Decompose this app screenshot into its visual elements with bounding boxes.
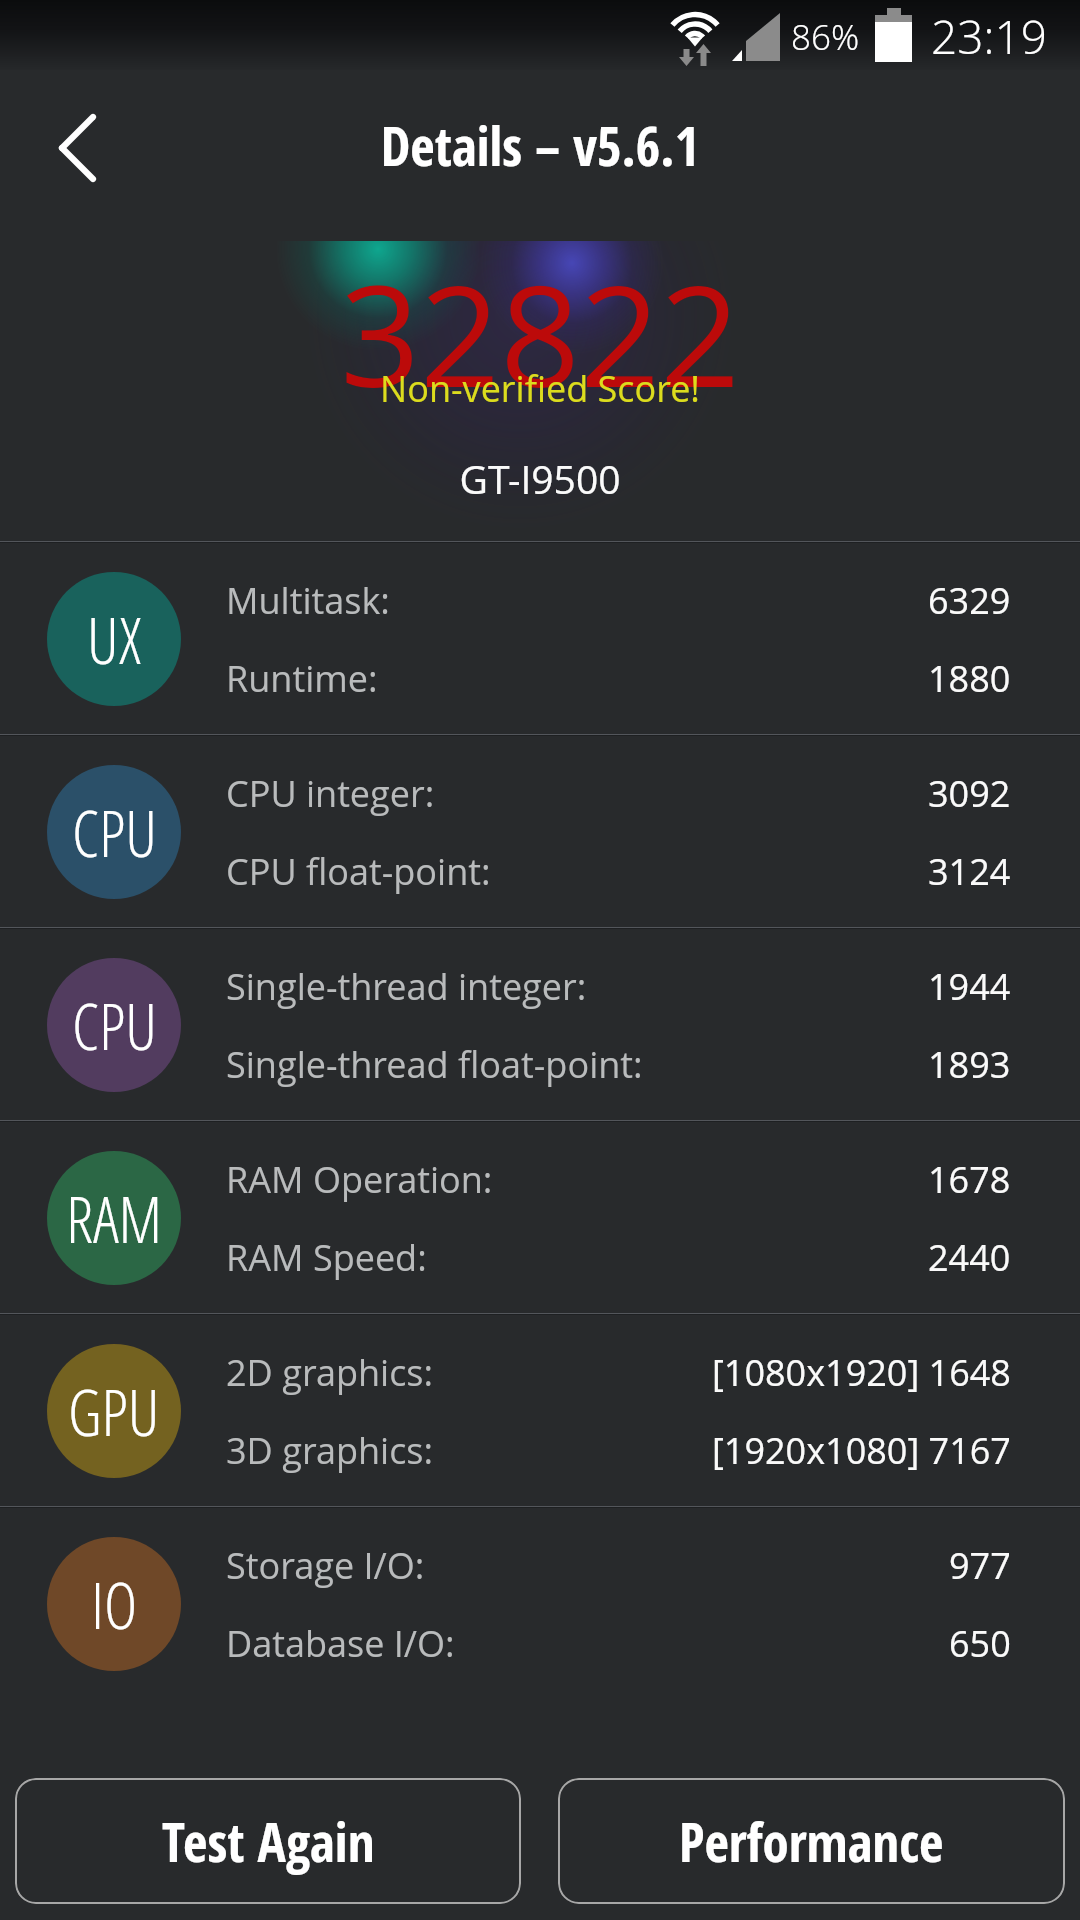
staticText: UX <box>87 596 141 683</box>
staticText: 1944 <box>928 962 1011 1011</box>
button[interactable]: CPU <box>0 736 1080 927</box>
staticText: RAM <box>66 1175 163 1262</box>
staticText: RAM Speed: <box>226 1233 427 1282</box>
staticText: Details – v5.6.1 <box>0 109 1080 181</box>
staticText: GPU <box>68 1368 160 1455</box>
staticText: GT-I9500 <box>0 452 1080 505</box>
staticText: IO <box>91 1561 138 1648</box>
staticText: CPU float-point: <box>226 847 491 896</box>
staticText: CPU <box>72 789 157 876</box>
staticText: Performance <box>679 1805 944 1877</box>
staticText: 86% <box>791 13 860 61</box>
staticText: 1678 <box>928 1155 1011 1204</box>
button[interactable]: IO <box>0 1508 1080 1699</box>
staticText: 1893 <box>928 1040 1011 1089</box>
button[interactable]: Performance <box>558 1778 1065 1904</box>
staticText: 3092 <box>928 769 1011 818</box>
staticText: Storage I/O: <box>226 1541 425 1590</box>
staticText: Single-thread float-point: <box>226 1040 643 1089</box>
staticText: Single-thread integer: <box>226 962 587 1011</box>
staticText: 3124 <box>928 847 1011 896</box>
staticText: 3D graphics: <box>226 1426 434 1475</box>
staticText: [1920x1080] 7167 <box>712 1426 1011 1475</box>
staticText: 977 <box>949 1541 1011 1590</box>
staticText: Multitask: <box>226 576 390 625</box>
staticText: CPU <box>72 982 157 1069</box>
button[interactable]: UX <box>0 543 1080 734</box>
staticText: 2440 <box>928 1233 1011 1282</box>
staticText: 23:19 <box>931 5 1047 68</box>
button[interactable]: Back <box>30 92 130 192</box>
staticText: RAM Operation: <box>226 1155 493 1204</box>
button[interactable]: GPU <box>0 1315 1080 1506</box>
staticText: 6329 <box>928 576 1011 625</box>
staticText: CPU integer: <box>226 769 435 818</box>
staticText: Runtime: <box>226 654 378 703</box>
staticText: 2D graphics: <box>226 1348 434 1397</box>
staticText: Database I/O: <box>226 1619 455 1668</box>
staticText: Non-verified Score! <box>0 364 1080 413</box>
staticText: 1880 <box>928 654 1011 703</box>
button[interactable]: RAM <box>0 1122 1080 1313</box>
staticText: 650 <box>949 1619 1011 1668</box>
staticText: 32822 <box>0 237 1080 428</box>
button[interactable]: CPU <box>0 929 1080 1120</box>
staticText: [1080x1920] 1648 <box>712 1348 1011 1397</box>
button[interactable]: Test Again <box>15 1778 521 1904</box>
staticText: Test Again <box>162 1805 375 1877</box>
